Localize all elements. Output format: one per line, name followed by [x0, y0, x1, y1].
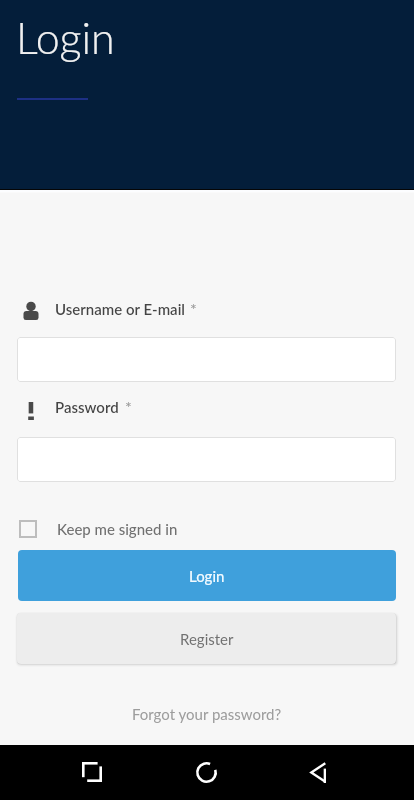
button[interactable]: Keep me signed in [19, 520, 178, 538]
button[interactable]: Home [182, 748, 230, 796]
button[interactable] [17, 437, 396, 482]
staticText: Username or E-mail [55, 300, 186, 318]
staticText: Login [189, 567, 225, 585]
staticText: * [125, 397, 132, 416]
staticText: Keep me signed in [57, 520, 178, 538]
staticText: Register [180, 630, 234, 648]
staticText: Password [55, 398, 119, 416]
button[interactable] [17, 337, 396, 382]
button[interactable]: Back [294, 748, 342, 796]
button[interactable]: Register [17, 613, 396, 664]
staticText: * [190, 299, 197, 318]
staticText: Login [16, 12, 115, 64]
button[interactable]: Login [18, 550, 396, 601]
button[interactable]: Forgot your password? [132, 705, 282, 723]
button[interactable]: Recent apps [68, 748, 116, 796]
